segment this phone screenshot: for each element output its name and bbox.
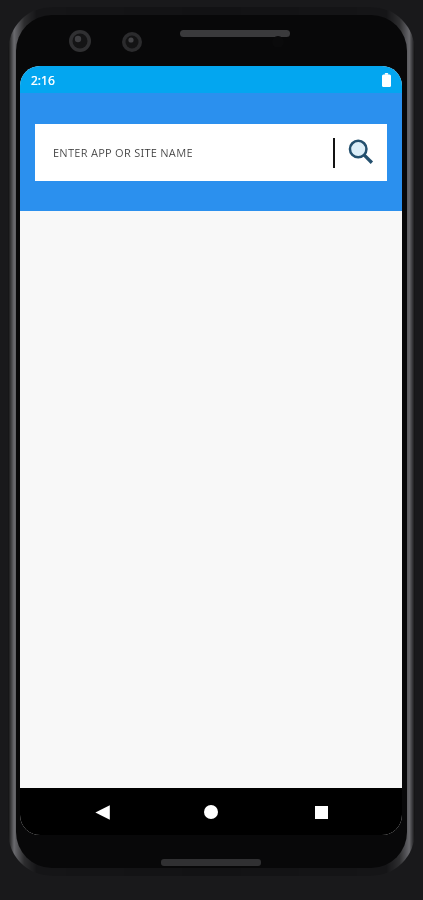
button[interactable]: Home — [189, 790, 233, 834]
button[interactable]: Recent apps — [299, 790, 343, 834]
button[interactable]: Back — [80, 790, 124, 834]
staticText: 2:16 — [31, 72, 55, 88]
button[interactable]: Search — [335, 124, 387, 181]
button[interactable]: ENTER APP OR SITE NAME — [35, 124, 387, 181]
staticText: ENTER APP OR SITE NAME — [53, 145, 333, 160]
